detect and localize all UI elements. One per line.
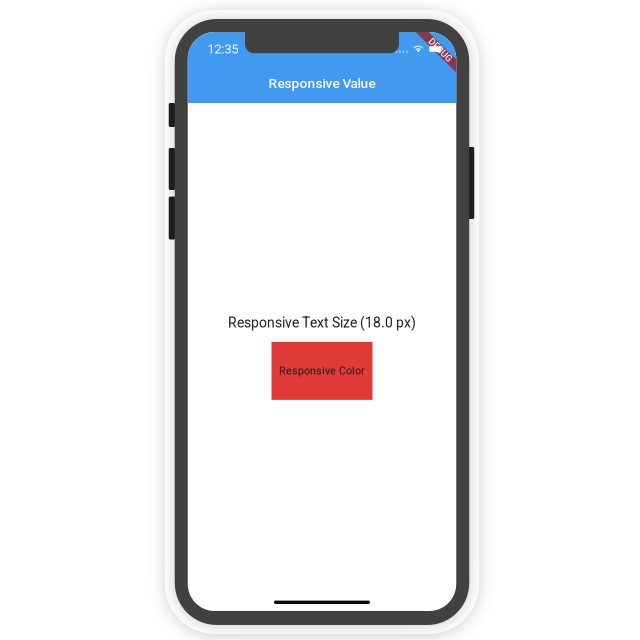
staticText: 12:35: [207, 41, 238, 57]
staticText: DEBUG: [426, 45, 455, 55]
staticText: Responsive Text Size (18.0 px): [228, 315, 416, 331]
staticText: Responsive Value: [268, 75, 375, 91]
staticText: Responsive Color: [279, 365, 365, 377]
